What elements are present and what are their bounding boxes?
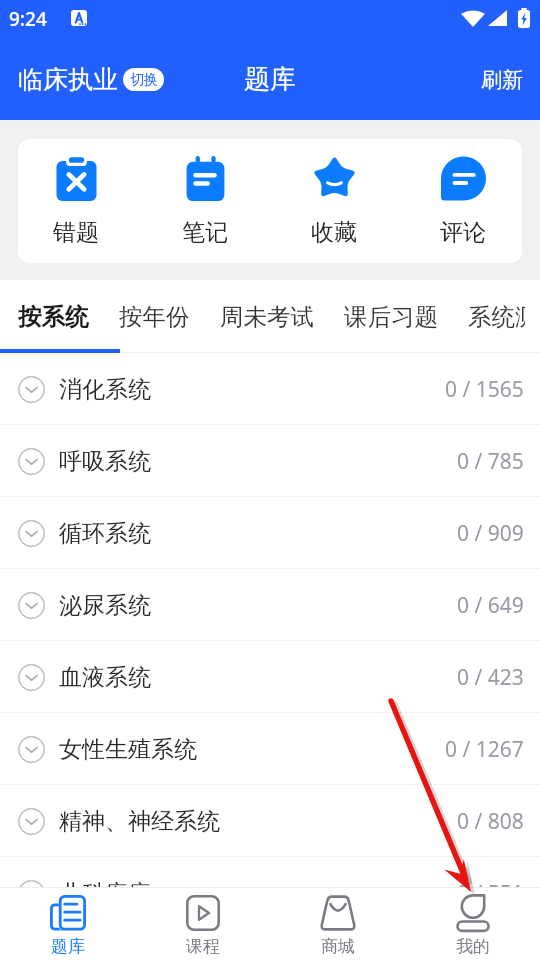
staticText: 循环系统 (59, 519, 151, 548)
staticText: 切换 (130, 71, 158, 89)
button[interactable]: 笔记 (150, 139, 260, 263)
staticText: 儿科疾病 (59, 879, 151, 887)
staticText: 0 / 909 (457, 519, 524, 548)
staticText: 0 / 423 (457, 663, 524, 692)
button[interactable]: 呼吸系统 (0, 425, 540, 497)
button[interactable]: 评论 (408, 139, 518, 263)
staticText: 0 / 808 (457, 807, 524, 836)
button[interactable]: 女性生殖系统 (0, 713, 540, 785)
staticText: 临床执业 (18, 64, 118, 95)
button[interactable]: 血液系统 (0, 641, 540, 713)
staticText: 按系统 (18, 302, 89, 332)
staticText: 消化系统 (59, 375, 151, 404)
staticText: 0 / 551 (457, 879, 524, 887)
staticText: 呼吸系统 (59, 447, 151, 476)
staticText: 0 / 1267 (445, 735, 524, 764)
staticText: 0 / 785 (457, 447, 524, 476)
staticText: 收藏 (311, 218, 357, 247)
staticText: 精神、神经系统 (59, 807, 220, 836)
staticText: 课后习题 (344, 302, 438, 332)
staticText: 商城 (321, 936, 355, 957)
button[interactable]: 刷新 (464, 59, 540, 101)
button[interactable]: 消化系统 (0, 353, 540, 425)
staticText: 周未考试 (220, 302, 314, 332)
staticText: 课程 (186, 936, 220, 957)
button[interactable]: 错题 (21, 139, 131, 263)
button[interactable]: 临床执业 (0, 58, 174, 101)
staticText: 评论 (440, 218, 486, 247)
staticText: 题库 (244, 63, 296, 96)
staticText: 泌尿系统 (59, 591, 151, 620)
button[interactable]: 题库 (0, 888, 135, 960)
staticText: 刷新 (481, 67, 523, 93)
staticText: 血液系统 (59, 663, 151, 692)
button[interactable]: 课程 (135, 888, 270, 960)
staticText: 题库 (51, 936, 85, 957)
button[interactable]: 课后习题 (329, 280, 453, 353)
staticText: 9:24 (9, 6, 47, 32)
button[interactable]: 商城 (270, 888, 405, 960)
staticText: 按年份 (119, 302, 190, 332)
staticText: 错题 (53, 218, 99, 247)
staticText: 0 / 649 (457, 591, 524, 620)
button[interactable]: 周未考试 (205, 280, 329, 353)
button[interactable]: 泌尿系统 (0, 569, 540, 641)
staticText: 0 / 1565 (445, 375, 524, 404)
staticText: 女性生殖系统 (59, 735, 197, 764)
button[interactable]: 儿科疾病 (0, 857, 540, 887)
button[interactable]: 按年份 (104, 280, 205, 353)
button[interactable]: 我的 (405, 888, 540, 960)
button[interactable]: 循环系统 (0, 497, 540, 569)
staticText: 我的 (456, 936, 490, 957)
button[interactable]: 系统测试 (453, 280, 540, 353)
staticText: 笔记 (182, 218, 228, 247)
button[interactable]: 收藏 (279, 139, 389, 263)
button[interactable]: 按系统 (3, 280, 104, 353)
staticText: 系统测试 (468, 302, 525, 332)
button[interactable]: 精神、神经系统 (0, 785, 540, 857)
